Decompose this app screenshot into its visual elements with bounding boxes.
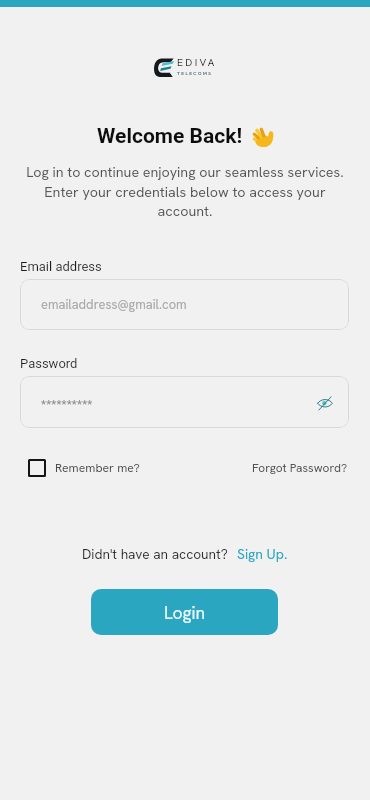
- button[interactable]: **********: [20, 376, 349, 428]
- staticText: Email address: [20, 259, 102, 274]
- button[interactable]: Show password: [312, 389, 338, 415]
- button[interactable]: Forgot Password?: [252, 457, 348, 479]
- staticText: Didn't have an account?: [82, 545, 228, 563]
- staticText: **********: [41, 397, 93, 411]
- button[interactable]: emailaddress@gmail.com: [20, 279, 349, 330]
- staticText: Sign Up.: [237, 545, 288, 563]
- staticText: EDIVA: [177, 56, 217, 69]
- button[interactable]: Remember me?: [28, 456, 140, 480]
- button[interactable]: Login: [91, 589, 278, 635]
- staticText: TELECOMS: [177, 70, 213, 76]
- button[interactable]: Sign Up.: [237, 545, 288, 563]
- staticText: emailaddress@gmail.com: [41, 296, 187, 313]
- staticText: Remember me?: [55, 460, 140, 476]
- staticText: Password: [20, 356, 78, 371]
- staticText: Welcome Back!: [97, 124, 243, 149]
- staticText: Forgot Password?: [252, 460, 348, 476]
- staticText: Log in to continue enjoying our seamless…: [20, 163, 350, 220]
- staticText: Login: [164, 601, 206, 624]
